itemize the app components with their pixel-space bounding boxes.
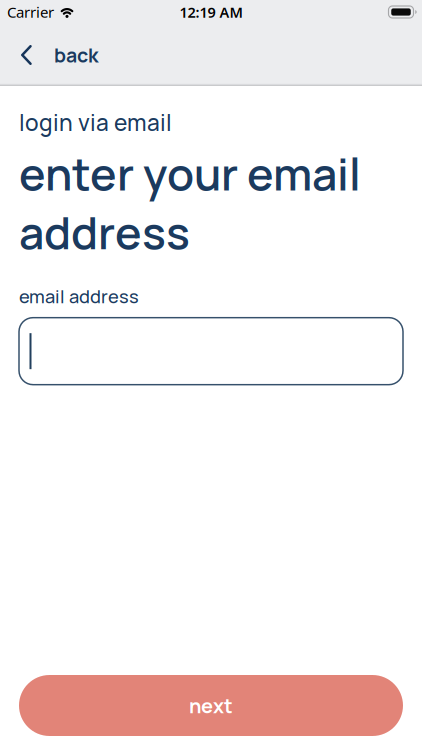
- staticText: Carrier: [7, 2, 54, 22]
- button[interactable]: Back: [0, 42, 98, 68]
- button[interactable]: email address: [19, 318, 403, 385]
- button[interactable]: next: [19, 675, 403, 736]
- staticText: next: [189, 692, 233, 719]
- staticText: back: [54, 42, 98, 68]
- staticText: login via email: [19, 107, 172, 138]
- staticText: email address: [19, 284, 139, 309]
- staticText: enter your email address: [19, 144, 361, 262]
- staticText: 12:19 AM: [179, 2, 242, 22]
